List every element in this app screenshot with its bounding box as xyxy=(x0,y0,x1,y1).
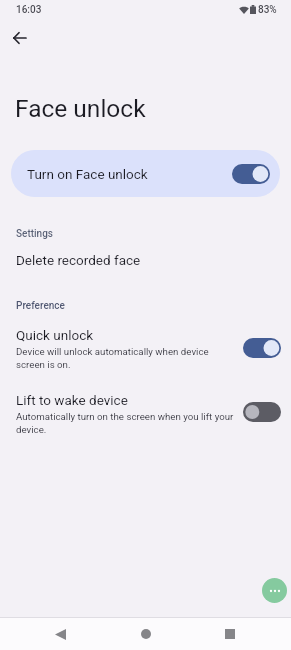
staticText: Quick unlock xyxy=(16,327,94,343)
button[interactable]: Turn on Face unlock xyxy=(11,150,280,197)
staticText: Settings xyxy=(16,228,54,240)
button[interactable]: Home xyxy=(130,618,162,650)
staticText: Turn on Face unlock xyxy=(27,166,148,182)
button[interactable]: Lift to wake device xyxy=(0,386,291,441)
button[interactable]: Turn off xyxy=(243,338,281,358)
staticText: Face unlock xyxy=(15,94,146,123)
staticText: 16:03 xyxy=(16,4,42,16)
button[interactable]: Turn on xyxy=(243,402,281,422)
button[interactable]: Back xyxy=(44,618,76,650)
button[interactable]: More options xyxy=(262,578,287,603)
button[interactable]: Back xyxy=(5,24,33,52)
staticText: Preference xyxy=(16,300,65,312)
staticText: Delete recorded face xyxy=(16,252,141,268)
button[interactable]: Quick unlock xyxy=(0,321,291,376)
staticText: 83% xyxy=(258,4,277,16)
button[interactable]: Recents xyxy=(214,618,246,650)
staticText: Lift to wake device xyxy=(16,392,128,408)
button[interactable]: Turn off xyxy=(232,164,270,184)
button[interactable]: Delete recorded face xyxy=(0,247,291,273)
staticText: Automatically turn on the screen when yo… xyxy=(16,411,236,435)
staticText: Device will unlock automatically when de… xyxy=(16,346,236,370)
